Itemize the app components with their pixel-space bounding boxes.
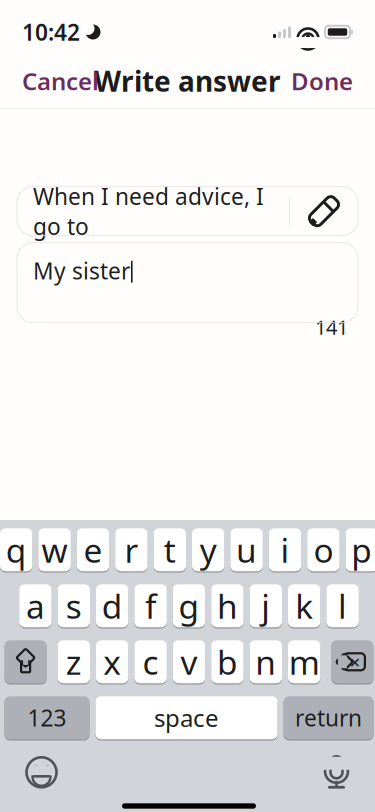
- staticText: c: [143, 640, 159, 684]
- staticText: k: [295, 584, 313, 628]
- button[interactable]: Return: [283, 695, 373, 740]
- button[interactable]: Edit prompt: [290, 175, 358, 247]
- staticText: q: [6, 528, 27, 572]
- staticText: v: [180, 640, 197, 684]
- button[interactable]: i: [269, 527, 301, 572]
- button[interactable]: c: [134, 639, 167, 684]
- staticText: i: [280, 528, 289, 572]
- staticText: Done: [291, 65, 353, 97]
- button[interactable]: f: [134, 583, 167, 628]
- button[interactable]: l: [326, 583, 359, 628]
- staticText: e: [83, 528, 102, 572]
- button[interactable]: e: [77, 527, 109, 572]
- button[interactable]: Dictation: [310, 749, 362, 795]
- staticText: Cancel: [22, 65, 99, 97]
- button[interactable]: p: [346, 527, 375, 572]
- button[interactable]: Delete: [331, 639, 373, 684]
- staticText: u: [236, 528, 257, 572]
- staticText: z: [66, 640, 82, 684]
- button[interactable]: o: [307, 527, 340, 572]
- button[interactable]: Numbers: [4, 695, 89, 740]
- button[interactable]: j: [250, 583, 282, 628]
- button[interactable]: m: [288, 639, 320, 684]
- button[interactable]: v: [173, 639, 205, 684]
- staticText: return: [295, 703, 362, 733]
- staticText: When I need advice, I go to: [33, 181, 264, 241]
- staticText: d: [102, 584, 123, 628]
- button[interactable]: x: [96, 639, 128, 684]
- staticText: t: [164, 528, 176, 572]
- staticText: w: [42, 528, 68, 572]
- button[interactable]: q: [0, 527, 32, 572]
- staticText: p: [351, 528, 372, 572]
- button[interactable]: Emoji: [15, 749, 67, 795]
- staticText: a: [26, 584, 45, 628]
- button[interactable]: n: [250, 639, 282, 684]
- staticText: 141: [315, 314, 348, 340]
- staticText: l: [338, 584, 347, 628]
- staticText: n: [255, 640, 276, 684]
- staticText: My sister: [33, 256, 130, 286]
- button[interactable]: d: [96, 583, 128, 628]
- staticText: o: [313, 528, 333, 572]
- staticText: h: [217, 584, 238, 628]
- staticText: s: [66, 584, 82, 628]
- button[interactable]: u: [230, 527, 263, 572]
- staticText: f: [145, 584, 156, 628]
- button[interactable]: Shift: [5, 639, 47, 684]
- button[interactable]: b: [211, 639, 244, 684]
- button[interactable]: z: [58, 639, 90, 684]
- staticText: x: [103, 640, 121, 684]
- button[interactable]: a: [19, 583, 52, 628]
- staticText: b: [217, 640, 238, 684]
- button[interactable]: s: [58, 583, 90, 628]
- button[interactable]: y: [192, 527, 224, 572]
- staticText: 10:42: [22, 17, 80, 47]
- button[interactable]: t: [154, 527, 186, 572]
- button[interactable]: k: [288, 583, 320, 628]
- button[interactable]: w: [38, 527, 71, 572]
- staticText: g: [178, 584, 199, 628]
- button[interactable]: r: [115, 527, 148, 572]
- button[interactable]: g: [173, 583, 205, 628]
- staticText: y: [200, 528, 217, 572]
- staticText: ×: [349, 649, 360, 674]
- button[interactable]: Done: [280, 56, 364, 106]
- staticText: j: [261, 584, 270, 628]
- button[interactable]: h: [211, 583, 244, 628]
- staticText: r: [124, 528, 138, 572]
- staticText: Write answer: [94, 62, 281, 100]
- button[interactable]: space: [95, 695, 277, 740]
- staticText: m: [289, 640, 320, 684]
- button[interactable]: Cancel: [11, 56, 110, 106]
- staticText: 123: [27, 703, 66, 733]
- staticText: space: [154, 702, 219, 734]
